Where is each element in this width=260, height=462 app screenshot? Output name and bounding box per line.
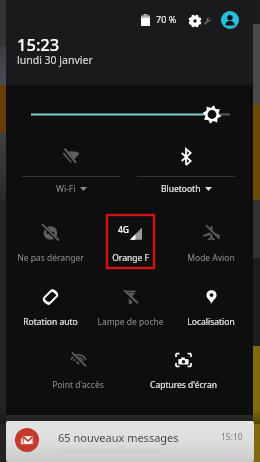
- button[interactable]: 65 nouveaux messages: [6, 421, 254, 462]
- staticText: 15:10: [221, 431, 243, 443]
- staticText: 4G: [118, 224, 130, 236]
- staticText: Ne pas déranger: [17, 252, 84, 264]
- staticText: Mode Avion: [187, 252, 235, 264]
- button[interactable]: Wi-Fi: [13, 140, 129, 196]
- button[interactable]: Mode Avion: [171, 216, 251, 270]
- staticText: 65 nouveaux messages: [58, 430, 179, 445]
- staticText: 15:23: [17, 33, 60, 55]
- staticText: 70 %: [156, 13, 177, 25]
- button[interactable]: Lampe de poche: [90, 280, 170, 334]
- button[interactable]: Rotation auto: [10, 280, 90, 334]
- button[interactable]: Orange F: [90, 216, 170, 270]
- button[interactable]: Bluetooth: [128, 140, 244, 196]
- staticText: Orange F: [112, 252, 149, 264]
- button[interactable]: Point d'accès: [38, 343, 118, 397]
- staticText: Point d'accès: [52, 379, 104, 391]
- button[interactable]: Ne pas déranger: [10, 216, 90, 270]
- button[interactable]: Localisation: [171, 280, 251, 334]
- button[interactable]: Settings: [187, 12, 213, 30]
- button[interactable]: Brightness: [14, 98, 246, 130]
- staticText: Lampe de poche: [97, 316, 164, 328]
- button[interactable]: User account: [221, 11, 239, 29]
- staticText: Rotation auto: [23, 316, 78, 328]
- button[interactable]: Captures d'écran: [143, 343, 223, 397]
- staticText: Localisation: [187, 316, 235, 328]
- staticText: Captures d'écran: [150, 379, 217, 391]
- staticText: Bluetooth: [161, 183, 201, 195]
- staticText: Wi-Fi: [56, 183, 76, 195]
- staticText: lundi 30 janvier: [17, 53, 93, 67]
